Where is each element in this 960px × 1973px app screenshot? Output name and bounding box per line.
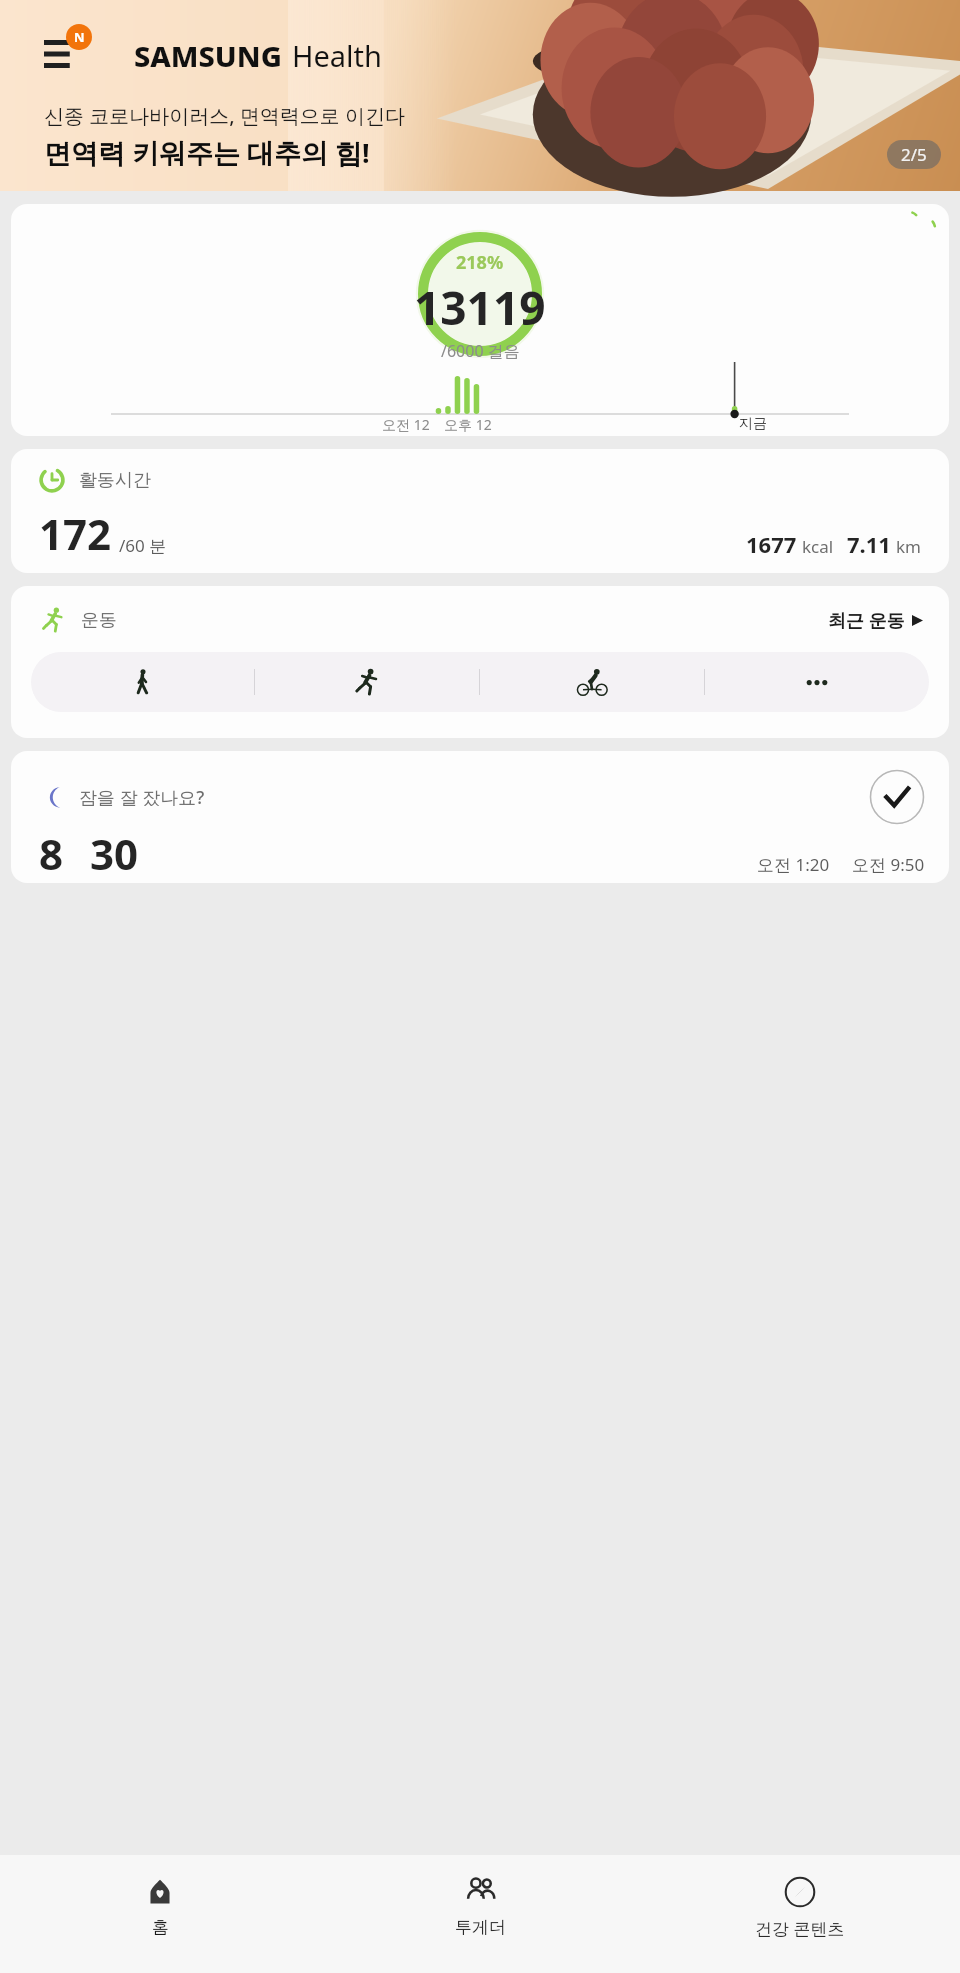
staticText: 투게더 xyxy=(455,1917,506,1938)
staticText: km xyxy=(896,535,921,558)
button[interactable]: Menu xyxy=(40,30,88,78)
button[interactable]: Running xyxy=(255,652,479,712)
staticText: 지금 xyxy=(739,415,767,433)
button[interactable]: 최근 운동 xyxy=(828,608,923,633)
staticText: 최근 운동 xyxy=(828,608,905,633)
staticText: 7.11 xyxy=(847,529,891,559)
button[interactable]: 운동 xyxy=(11,586,949,738)
button[interactable]: Cycling xyxy=(480,652,704,712)
staticText: 218% xyxy=(456,250,504,275)
staticText: /60 분 xyxy=(119,534,167,557)
button[interactable]: 218% xyxy=(11,204,949,436)
staticText: 면역력 키워주는 대추의 힘! xyxy=(44,134,370,171)
staticText: 신종 코로나바이러스, 면역력으로 이긴다 xyxy=(44,102,406,129)
staticText: 잠을 잘 잤나요? xyxy=(79,785,205,810)
staticText: 홈 xyxy=(152,1917,169,1938)
button[interactable]: 잠을 잘 잤나요? xyxy=(11,751,949,883)
staticText: 활동시간 xyxy=(79,469,151,492)
staticText: Health xyxy=(292,36,382,75)
staticText: 오후 12 xyxy=(444,415,492,434)
staticText: 30 xyxy=(90,825,139,882)
button[interactable]: 활동시간 xyxy=(11,449,949,573)
button[interactable]: 투게더 xyxy=(320,1855,640,1973)
staticText: 운동 xyxy=(81,609,117,632)
button[interactable]: Walking xyxy=(31,652,254,712)
button[interactable]: 홈 xyxy=(0,1855,320,1973)
staticText: 오전 12 xyxy=(382,415,430,434)
staticText: 건강 콘텐츠 xyxy=(755,1917,845,1940)
staticText: 오전 9:50 xyxy=(852,853,925,876)
staticText: /6000 걸음 xyxy=(441,340,520,362)
staticText: N xyxy=(74,28,85,46)
staticText: 13119 xyxy=(414,276,546,339)
staticText: 오전 1:20 xyxy=(757,853,830,876)
button[interactable]: Confirm xyxy=(869,769,925,825)
button[interactable]: More xyxy=(705,652,929,712)
button[interactable]: 건강 콘텐츠 xyxy=(640,1855,960,1973)
staticText: 8 xyxy=(39,825,64,882)
staticText: 1677 xyxy=(746,529,797,559)
button[interactable]: Menu xyxy=(0,0,960,191)
staticText: 2/5 xyxy=(901,143,927,166)
staticText: 172 xyxy=(39,505,112,562)
staticText: kcal xyxy=(802,535,834,558)
staticText: SAMSUNG xyxy=(134,36,282,75)
